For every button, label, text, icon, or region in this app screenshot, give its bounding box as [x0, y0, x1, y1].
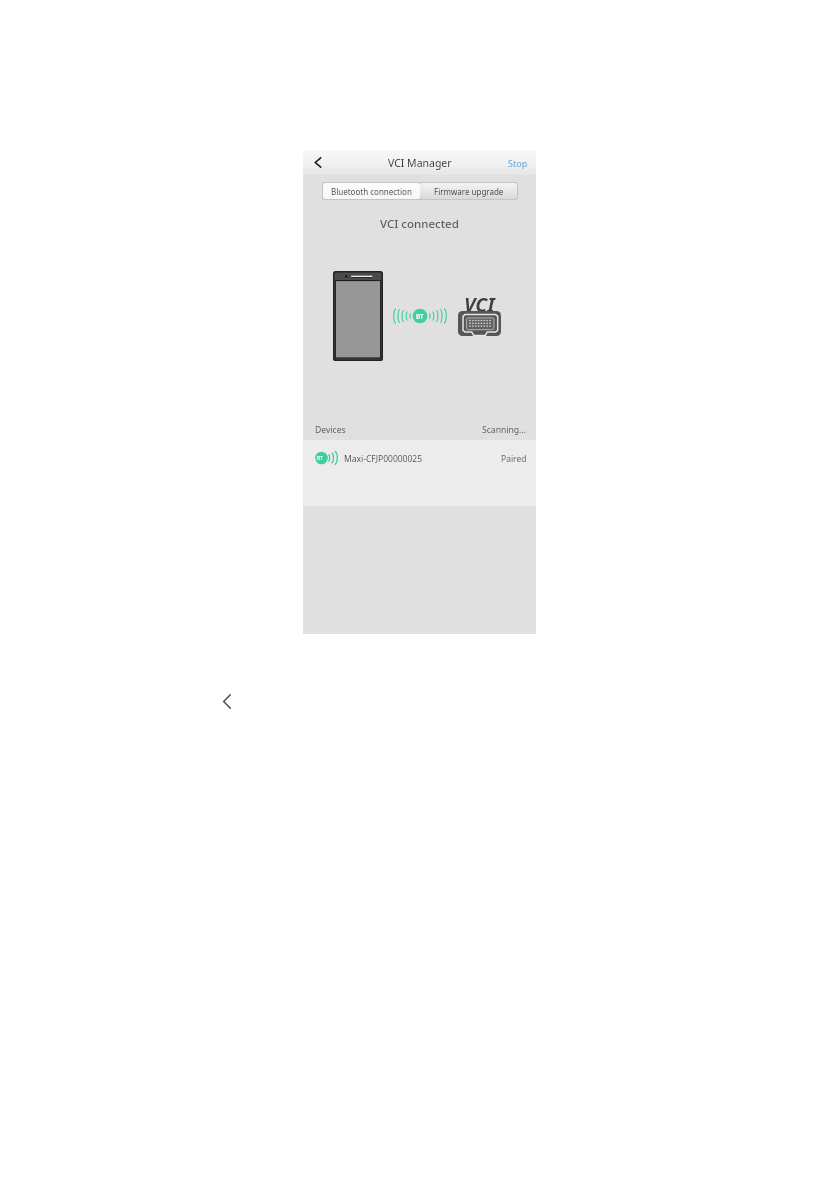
- button[interactable]: BT: [303, 440, 536, 506]
- button[interactable]: Stop: [508, 157, 528, 169]
- button[interactable]: Back: [216, 689, 234, 711]
- staticText: Maxi-CFJP00000025: [344, 453, 423, 465]
- button[interactable]: Firmware upgrade: [420, 183, 517, 199]
- staticText: VCI Manager: [388, 156, 452, 170]
- staticText: Stop: [508, 157, 528, 169]
- staticText: Scanning...: [482, 424, 527, 436]
- staticText: VCI: [464, 291, 495, 318]
- staticText: Bluetooth connection: [331, 186, 412, 197]
- staticText: Paired: [501, 453, 527, 465]
- staticText: VCI connected: [380, 216, 459, 232]
- staticText: Devices: [315, 424, 346, 436]
- button[interactable]: Back: [308, 154, 326, 172]
- staticText: BT: [416, 312, 424, 321]
- staticText: Firmware upgrade: [434, 186, 504, 197]
- staticText: BT: [317, 455, 323, 461]
- button[interactable]: Bluetooth connection: [323, 183, 420, 199]
